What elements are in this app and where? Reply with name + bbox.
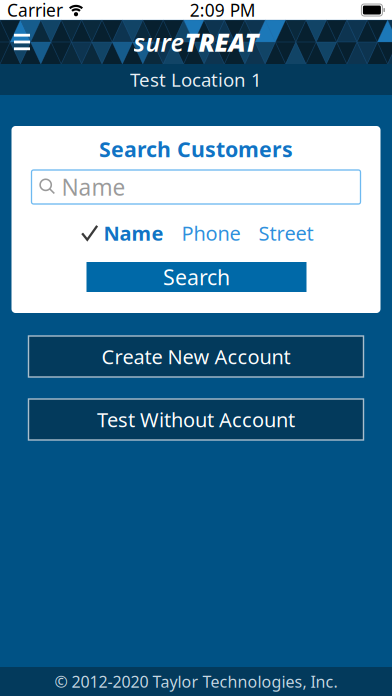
staticText: Search Customers [99,135,293,163]
staticText: Create New Account [101,343,290,370]
staticText: TREAT [184,25,258,59]
staticText: Test Location 1 [130,67,262,92]
staticText: sure [133,25,184,59]
button[interactable]: Phone [181,217,240,249]
staticText: Street [258,220,313,246]
staticText: Name [61,172,125,202]
staticText: 2:09 PM [190,0,256,21]
button[interactable]: Name [81,217,163,249]
button[interactable]: Menu [0,20,44,64]
staticText: Search [163,263,230,291]
button[interactable]: Create New Account [28,336,363,377]
staticText: Carrier [7,0,63,21]
staticText: Name [103,220,163,246]
button[interactable]: Street [258,217,313,249]
button[interactable]: Search [86,262,306,292]
button[interactable]: Test Without Account [28,399,363,440]
staticText: Phone [181,220,240,246]
staticText: © 2012-2020 Taylor Technologies, Inc. [54,671,337,692]
staticText: Test Without Account [97,406,295,433]
